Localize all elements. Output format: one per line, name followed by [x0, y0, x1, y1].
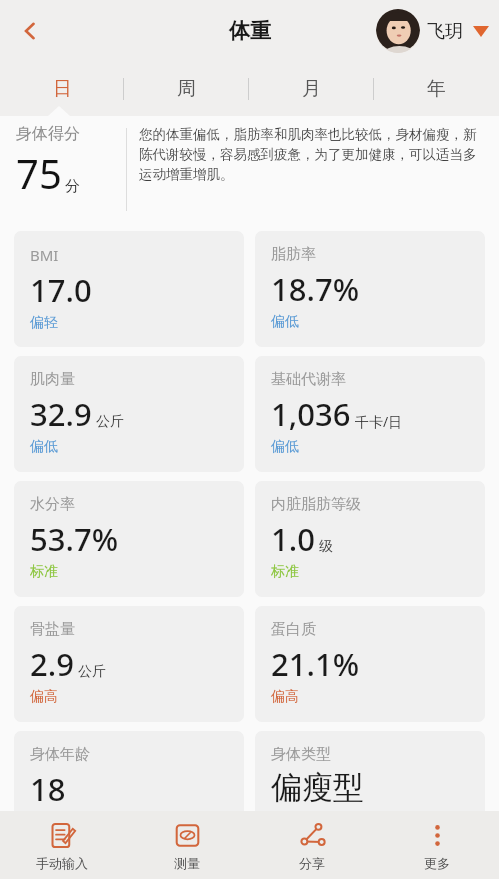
staticText: 月 — [302, 77, 321, 101]
staticText: 您的体重偏低，脂肪率和肌肉率也比较低，身材偏瘦，新陈代谢较慢，容易感到疲惫，为了… — [139, 126, 487, 183]
staticText: 偏低 — [271, 313, 299, 331]
button[interactable]: 身体年龄 — [14, 731, 244, 847]
staticText: 偏高 — [30, 688, 58, 706]
staticText: 日 — [53, 77, 72, 101]
staticText: 公斤 — [96, 413, 124, 431]
button[interactable]: 骨盐量 — [14, 606, 244, 722]
staticText: 体重 — [229, 18, 271, 44]
staticText: 千卡/日 — [355, 412, 403, 431]
button[interactable]: 肌肉量 — [14, 356, 244, 472]
staticText: 21.1% — [271, 643, 360, 685]
staticText: 2.9 — [30, 643, 74, 685]
staticText: 53.7% — [30, 518, 119, 560]
staticText: BMI — [30, 245, 59, 265]
button[interactable]: 年 — [374, 62, 499, 116]
staticText: 内脏脂肪等级 — [271, 495, 361, 514]
button[interactable]: 内脏脂肪等级 — [255, 481, 485, 597]
staticText: 骨盐量 — [30, 620, 75, 639]
button[interactable]: 脂肪率 — [255, 231, 485, 347]
button[interactable]: Back — [8, 9, 52, 53]
staticText: 蛋白质 — [271, 620, 316, 639]
staticText: 偏瘦型 — [271, 768, 364, 807]
staticText: 标准 — [30, 563, 58, 581]
staticText: 75 — [16, 146, 62, 200]
staticText: 年 — [427, 77, 446, 101]
button[interactable]: 水分率 — [14, 481, 244, 597]
staticText: 18.7% — [271, 268, 360, 310]
staticText: 18 — [30, 768, 66, 810]
staticText: 更多 — [424, 855, 450, 871]
staticText: 基础代谢率 — [271, 370, 346, 389]
button[interactable]: 蛋白质 — [255, 606, 485, 722]
button[interactable]: 手动输入 — [0, 811, 124, 879]
staticText: 偏低 — [30, 438, 58, 456]
button[interactable]: 飞玥 — [376, 9, 489, 53]
staticText: 1.0 — [271, 518, 315, 560]
staticText: 偏高 — [271, 688, 299, 706]
staticText: 肌肉量 — [30, 370, 75, 389]
staticText: 身体年龄 — [30, 745, 90, 764]
staticText: 17.0 — [30, 269, 92, 311]
staticText: 飞玥 — [427, 20, 463, 43]
button[interactable]: 日 — [0, 62, 124, 116]
staticText: 身体类型 — [271, 745, 331, 764]
staticText: 分 — [65, 177, 80, 196]
staticText: 级 — [319, 538, 333, 556]
staticText: 公斤 — [78, 663, 106, 681]
staticText: 水分率 — [30, 495, 75, 514]
staticText: 测量 — [174, 855, 200, 871]
staticText: 标准 — [271, 563, 299, 581]
button[interactable]: 周 — [124, 62, 249, 116]
button[interactable]: 月 — [249, 62, 374, 116]
button[interactable]: BMI — [14, 231, 244, 347]
staticText: 32.9 — [30, 393, 92, 435]
staticText: 分享 — [299, 855, 325, 871]
button[interactable]: 测量 — [124, 811, 249, 879]
staticText: 脂肪率 — [271, 245, 316, 264]
button[interactable]: 更多 — [374, 811, 499, 879]
button[interactable]: 基础代谢率 — [255, 356, 485, 472]
staticText: 1,036 — [271, 393, 351, 435]
button[interactable]: 身体类型 — [255, 731, 485, 847]
button[interactable]: 分享 — [249, 811, 374, 879]
staticText: 身体得分 — [16, 124, 80, 144]
staticText: 周 — [177, 77, 196, 101]
staticText: 偏低 — [271, 438, 299, 456]
staticText: 手动输入 — [36, 855, 88, 871]
staticText: 偏轻 — [30, 314, 58, 332]
